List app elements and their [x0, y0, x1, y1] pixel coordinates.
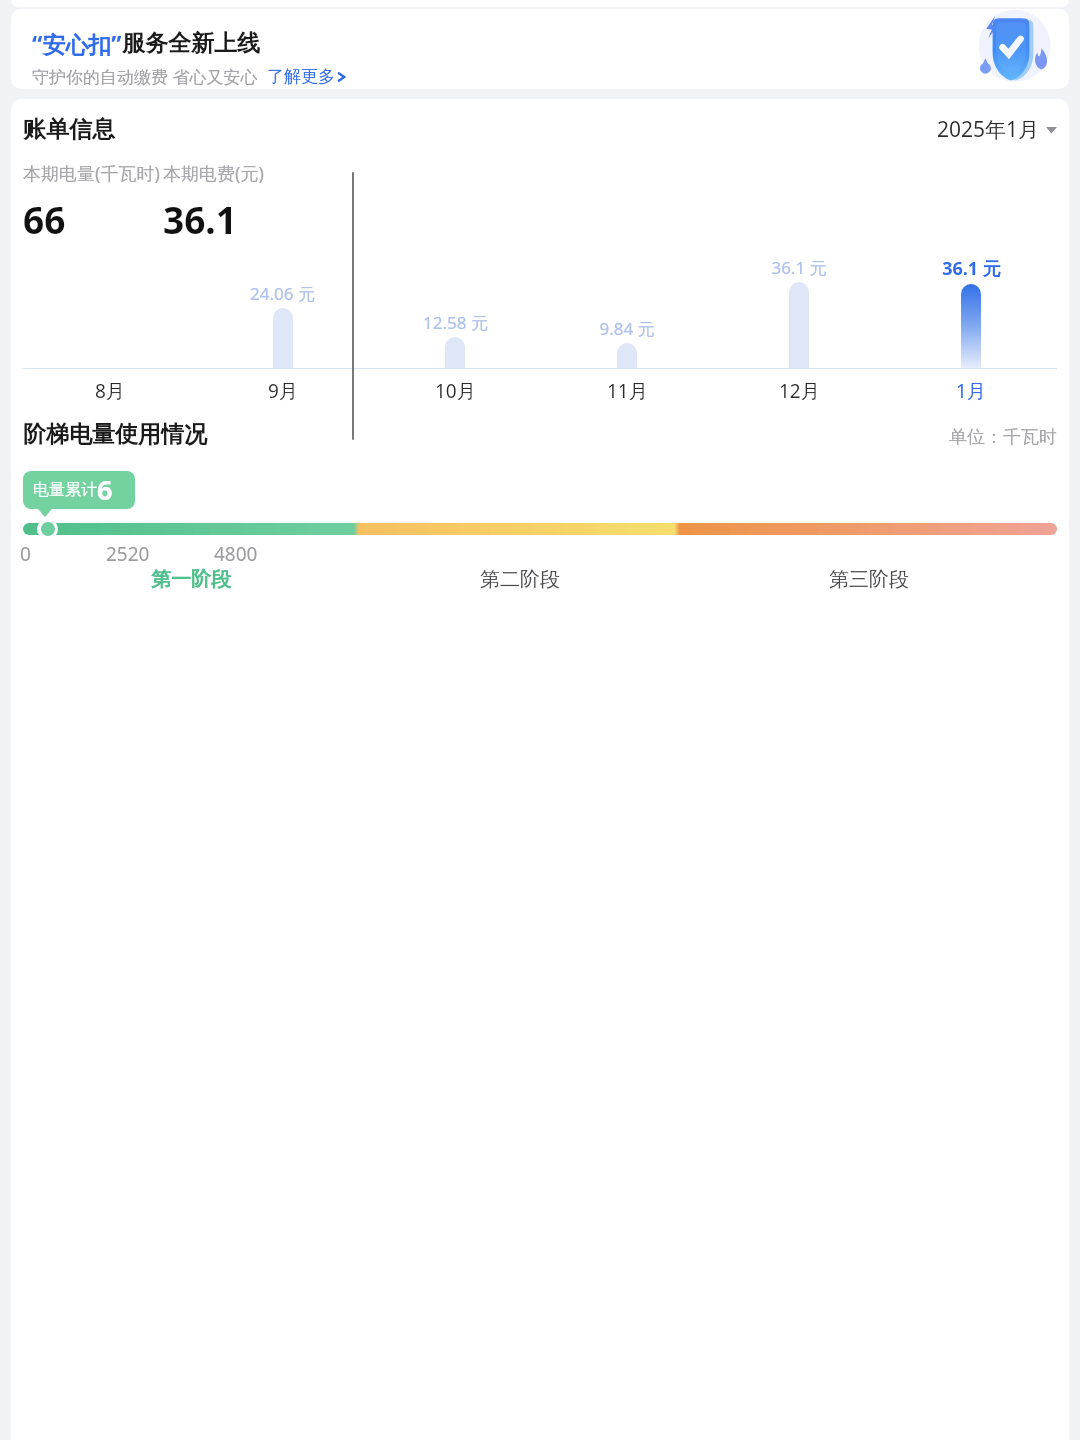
staticText: 本期电量(千瓦时) — [23, 161, 160, 186]
button[interactable]: “安心扣” — [11, 9, 1069, 89]
staticText: “安心扣” — [32, 28, 122, 59]
staticText: 0 — [20, 541, 31, 565]
staticText: 守护你的自动缴费 省心又安心 — [32, 65, 258, 88]
staticText: 9.84 元 — [599, 317, 655, 340]
staticText: 36.1 元 — [771, 256, 827, 279]
button[interactable]: 了解更多 — [267, 66, 346, 87]
staticText: 第二阶段 — [480, 567, 560, 592]
staticText: 4800 — [214, 541, 258, 565]
staticText: 服务全新上线 — [122, 29, 260, 58]
staticText: 12.58 元 — [423, 311, 488, 334]
staticText: 阶梯电量使用情况 — [23, 420, 207, 449]
staticText: 单位：千瓦时 — [949, 426, 1057, 449]
staticText: 12月 — [779, 378, 820, 404]
staticText: 了解更多 — [267, 66, 335, 87]
staticText: 1月 — [956, 378, 986, 404]
staticText: 2025年1月 — [937, 115, 1040, 144]
staticText: 第三阶段 — [829, 567, 909, 592]
other: 安心扣服务 — [973, 9, 1053, 89]
button[interactable]: 2025年1月 — [937, 115, 1057, 144]
staticText: 8月 — [95, 378, 125, 404]
staticText: 66 — [97, 471, 125, 509]
staticText: 本期电费(元) — [163, 161, 264, 186]
staticText: 36.1 — [163, 194, 237, 244]
staticText: 24.06 元 — [250, 282, 315, 305]
staticText: 66 — [23, 194, 66, 244]
staticText: 2520 — [106, 541, 150, 565]
button[interactable]: 电量累计 — [23, 471, 135, 509]
staticText: 9月 — [268, 378, 298, 404]
staticText: 11月 — [607, 378, 648, 404]
staticText: 36.1 元 — [942, 256, 1001, 281]
staticText: 账单信息 — [23, 115, 115, 144]
staticText: 电量累计 — [33, 480, 97, 500]
staticText: 第一阶段 — [151, 567, 231, 592]
staticText: 10月 — [435, 378, 476, 404]
